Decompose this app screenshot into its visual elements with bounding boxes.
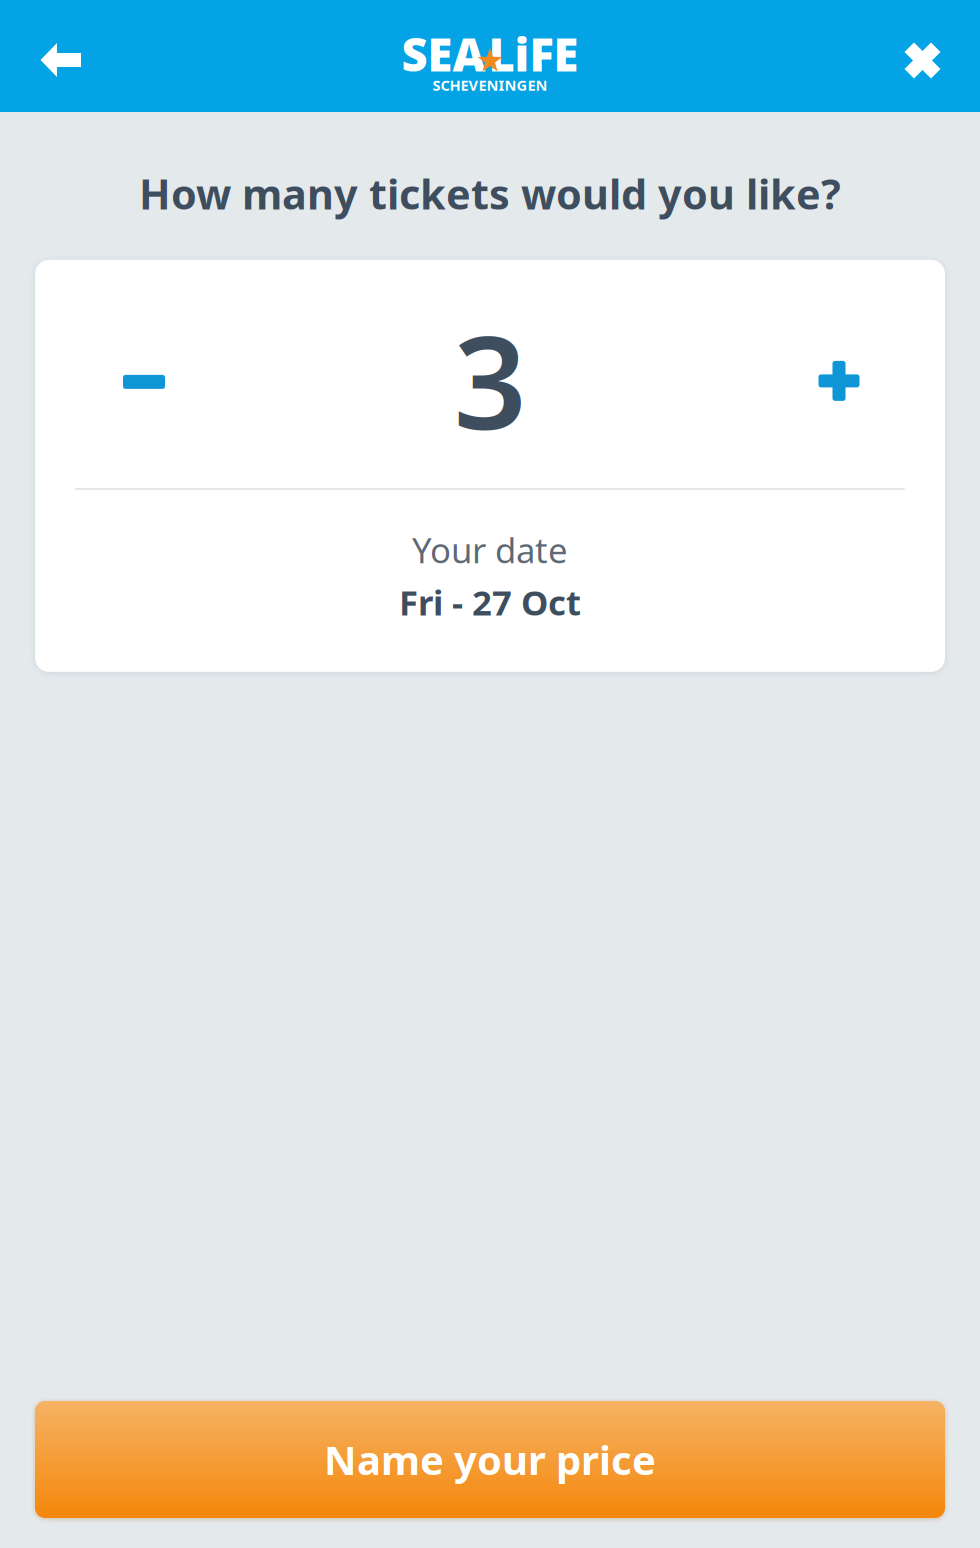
button[interactable]: Decrease ticket count (35, 260, 253, 488)
staticText: Your date (412, 527, 568, 573)
button[interactable]: Increase ticket count (733, 260, 945, 488)
staticText: How many tickets would you like? (139, 166, 841, 221)
staticText: LiFE (488, 24, 578, 84)
staticText: SCHEVENINGEN (432, 75, 547, 95)
staticText: Name your price (324, 1433, 656, 1486)
button[interactable]: Name your price (35, 1401, 945, 1518)
button[interactable]: Close (865, 0, 980, 112)
staticText: SEA (401, 24, 485, 84)
button[interactable]: Back (0, 0, 122, 112)
staticText: Fri - 27 Oct (399, 579, 581, 625)
staticText: 3 (453, 295, 526, 465)
